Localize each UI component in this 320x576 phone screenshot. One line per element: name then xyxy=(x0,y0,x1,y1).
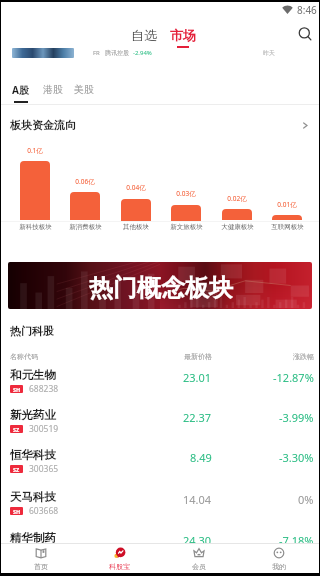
staticText: 8:46 xyxy=(297,3,317,17)
staticText: 603668 xyxy=(29,505,59,517)
staticText: SZ xyxy=(13,426,20,433)
staticText: 24.30 xyxy=(183,533,212,548)
staticText: 腾讯控股 xyxy=(105,49,129,57)
button[interactable]: 天马科技 xyxy=(1,488,319,527)
staticText: 新光药业 xyxy=(10,408,56,422)
button[interactable]: 自选 xyxy=(127,23,161,47)
button[interactable]: 港股 xyxy=(41,81,65,102)
staticText: 和元生物 xyxy=(10,368,56,382)
staticText: 8.49 xyxy=(190,450,212,465)
staticText: 热门科股 xyxy=(10,324,54,338)
button[interactable]: 会员 xyxy=(159,544,239,573)
staticText: 0.06亿 xyxy=(75,177,95,186)
staticText: 精华制药 xyxy=(10,531,56,545)
staticText: 名称代码 xyxy=(10,352,38,361)
button[interactable]: 恒华科技 xyxy=(1,446,319,485)
staticText: 0.03亿 xyxy=(176,189,196,198)
button[interactable]: 热门概念板块 xyxy=(8,262,312,309)
button[interactable]: 美股 xyxy=(72,81,96,102)
button[interactable]: 精华制药 xyxy=(1,529,319,568)
staticText: 新消费板块 xyxy=(69,223,102,231)
staticText: 新文旅板块 xyxy=(170,223,203,231)
staticText: FR xyxy=(93,49,100,57)
staticText: -2.94% xyxy=(133,49,152,57)
staticText: 0.02亿 xyxy=(227,194,247,203)
staticText: 自选 xyxy=(131,27,157,43)
staticText: 美股 xyxy=(74,83,94,96)
staticText: 首页 xyxy=(34,562,48,571)
staticText: 688238 xyxy=(29,383,59,395)
staticText: 新科技板块 xyxy=(19,223,52,231)
staticText: 板块资金流向 xyxy=(10,118,76,132)
staticText: 22.37 xyxy=(183,410,212,425)
staticText: 300519 xyxy=(29,423,59,435)
button[interactable]: 市场 xyxy=(166,23,200,52)
staticText: SH xyxy=(13,508,21,515)
staticText: 天马科技 xyxy=(10,490,56,504)
staticText: 会员 xyxy=(192,562,206,571)
button[interactable]: 新光药业 xyxy=(1,406,319,445)
staticText: -3.30% xyxy=(279,450,314,465)
staticText: 14.04 xyxy=(183,492,212,507)
button[interactable]: 和元生物 xyxy=(1,366,319,405)
staticText: 市场 xyxy=(170,27,196,43)
button[interactable]: 我的 xyxy=(239,544,319,573)
staticText: 我的 xyxy=(272,562,286,571)
staticText: 科股宝 xyxy=(109,562,130,571)
staticText: SH xyxy=(13,386,21,393)
staticText: -7.18% xyxy=(279,533,314,548)
button[interactable]: 首页 xyxy=(1,544,80,573)
button[interactable]: A股 xyxy=(10,81,31,105)
staticText: 恒华科技 xyxy=(10,448,56,462)
staticText: 0% xyxy=(298,492,314,507)
staticText: SZ xyxy=(13,466,20,473)
button[interactable]: 科股宝 xyxy=(80,544,159,573)
button[interactable]: Search xyxy=(293,22,317,46)
staticText: 23.01 xyxy=(183,370,212,385)
staticText: -12.87% xyxy=(273,370,314,385)
staticText: 300365 xyxy=(29,463,59,475)
staticText: 0.1亿 xyxy=(27,146,43,155)
staticText: 热门概念板块 xyxy=(89,273,233,303)
staticText: 涨跌幅 xyxy=(293,352,314,361)
staticText: 其他板块 xyxy=(123,223,149,231)
staticText: 港股 xyxy=(43,83,63,96)
staticText: 最新价格 xyxy=(184,352,212,361)
staticText: A股 xyxy=(12,83,29,97)
staticText: 昨天 xyxy=(263,49,275,57)
button[interactable]: 板块资金流向 xyxy=(1,112,319,138)
staticText: 互联网板块 xyxy=(271,223,304,231)
staticText: 0.01亿 xyxy=(277,200,297,209)
staticText: 0.04亿 xyxy=(126,183,146,192)
staticText: -3.99% xyxy=(279,410,314,425)
staticText: 大健康板块 xyxy=(221,223,254,231)
